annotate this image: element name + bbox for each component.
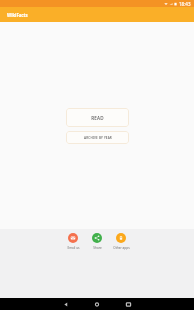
staticText: Other apps <box>113 246 130 250</box>
button[interactable]: ARCHIVE BY YEAR <box>66 131 129 144</box>
staticText: Share <box>93 246 102 250</box>
button[interactable]: READ <box>66 108 129 127</box>
staticText: WikiFacts <box>7 12 28 18</box>
staticText: ARCHIVE BY YEAR <box>84 136 112 140</box>
staticText: READ <box>91 115 104 121</box>
staticText: Email us <box>67 246 80 250</box>
button[interactable]: Recent apps <box>122 298 134 310</box>
staticText: 18:43 <box>179 1 191 7</box>
button[interactable]: Back <box>60 298 72 310</box>
button[interactable]: Share <box>85 233 109 250</box>
button[interactable]: Email us <box>61 233 85 250</box>
button[interactable]: Home <box>91 298 103 310</box>
button[interactable]: Other apps <box>109 233 133 250</box>
